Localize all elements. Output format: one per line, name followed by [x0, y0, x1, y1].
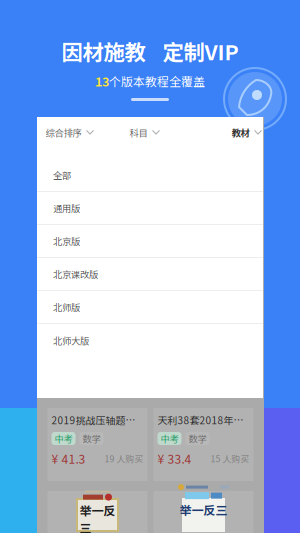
- button[interactable]: 举一反三: [153, 491, 253, 533]
- staticText: 数学: [82, 432, 100, 445]
- button[interactable]: 科目: [129, 117, 164, 148]
- staticText: ¥ 33.4: [157, 450, 191, 467]
- staticText: 教材: [231, 126, 249, 139]
- button[interactable]: 北京课改版: [37, 258, 263, 291]
- button[interactable]: 天利38套2018年新…: [153, 408, 253, 481]
- staticText: 举一反三: [179, 501, 227, 518]
- button[interactable]: 综合排序: [45, 117, 103, 148]
- button[interactable]: 教材: [231, 117, 267, 148]
- staticText: 全部: [53, 168, 71, 182]
- staticText: 举一反三: [79, 502, 115, 533]
- staticText: 个版本教程全覆盖: [109, 72, 205, 90]
- staticText: 北京版: [53, 234, 80, 248]
- button[interactable]: 北京版: [37, 225, 263, 258]
- staticText: 综合排序: [45, 126, 81, 139]
- staticText: ¥ 41.3: [51, 450, 85, 467]
- button[interactable]: 北师大版: [37, 324, 263, 357]
- staticText: 中考: [160, 432, 178, 445]
- button[interactable]: 2019挑战压轴题中…: [47, 408, 147, 481]
- staticText: 中考: [54, 432, 72, 445]
- staticText: 科目: [129, 126, 147, 139]
- button[interactable]: 通用版: [37, 192, 263, 225]
- button[interactable]: 举一反三: [47, 491, 147, 533]
- staticText: 北师版: [53, 300, 80, 314]
- staticText: 13: [95, 72, 109, 90]
- staticText: 通用版: [53, 201, 80, 215]
- staticText: 定制VIP: [162, 36, 238, 66]
- staticText: 19 人购买: [104, 452, 143, 465]
- button[interactable]: 北师版: [37, 291, 263, 324]
- staticText: 北京课改版: [53, 267, 98, 281]
- staticText: 数学: [188, 432, 206, 445]
- staticText: 15 人购买: [210, 452, 249, 465]
- button[interactable]: 全部: [37, 159, 263, 192]
- staticText: 天利38套2018年新…: [157, 413, 249, 427]
- staticText: 2019挑战压轴题中…: [51, 413, 143, 427]
- staticText: 北师大版: [53, 334, 89, 347]
- staticText: 因材施教: [61, 36, 145, 66]
